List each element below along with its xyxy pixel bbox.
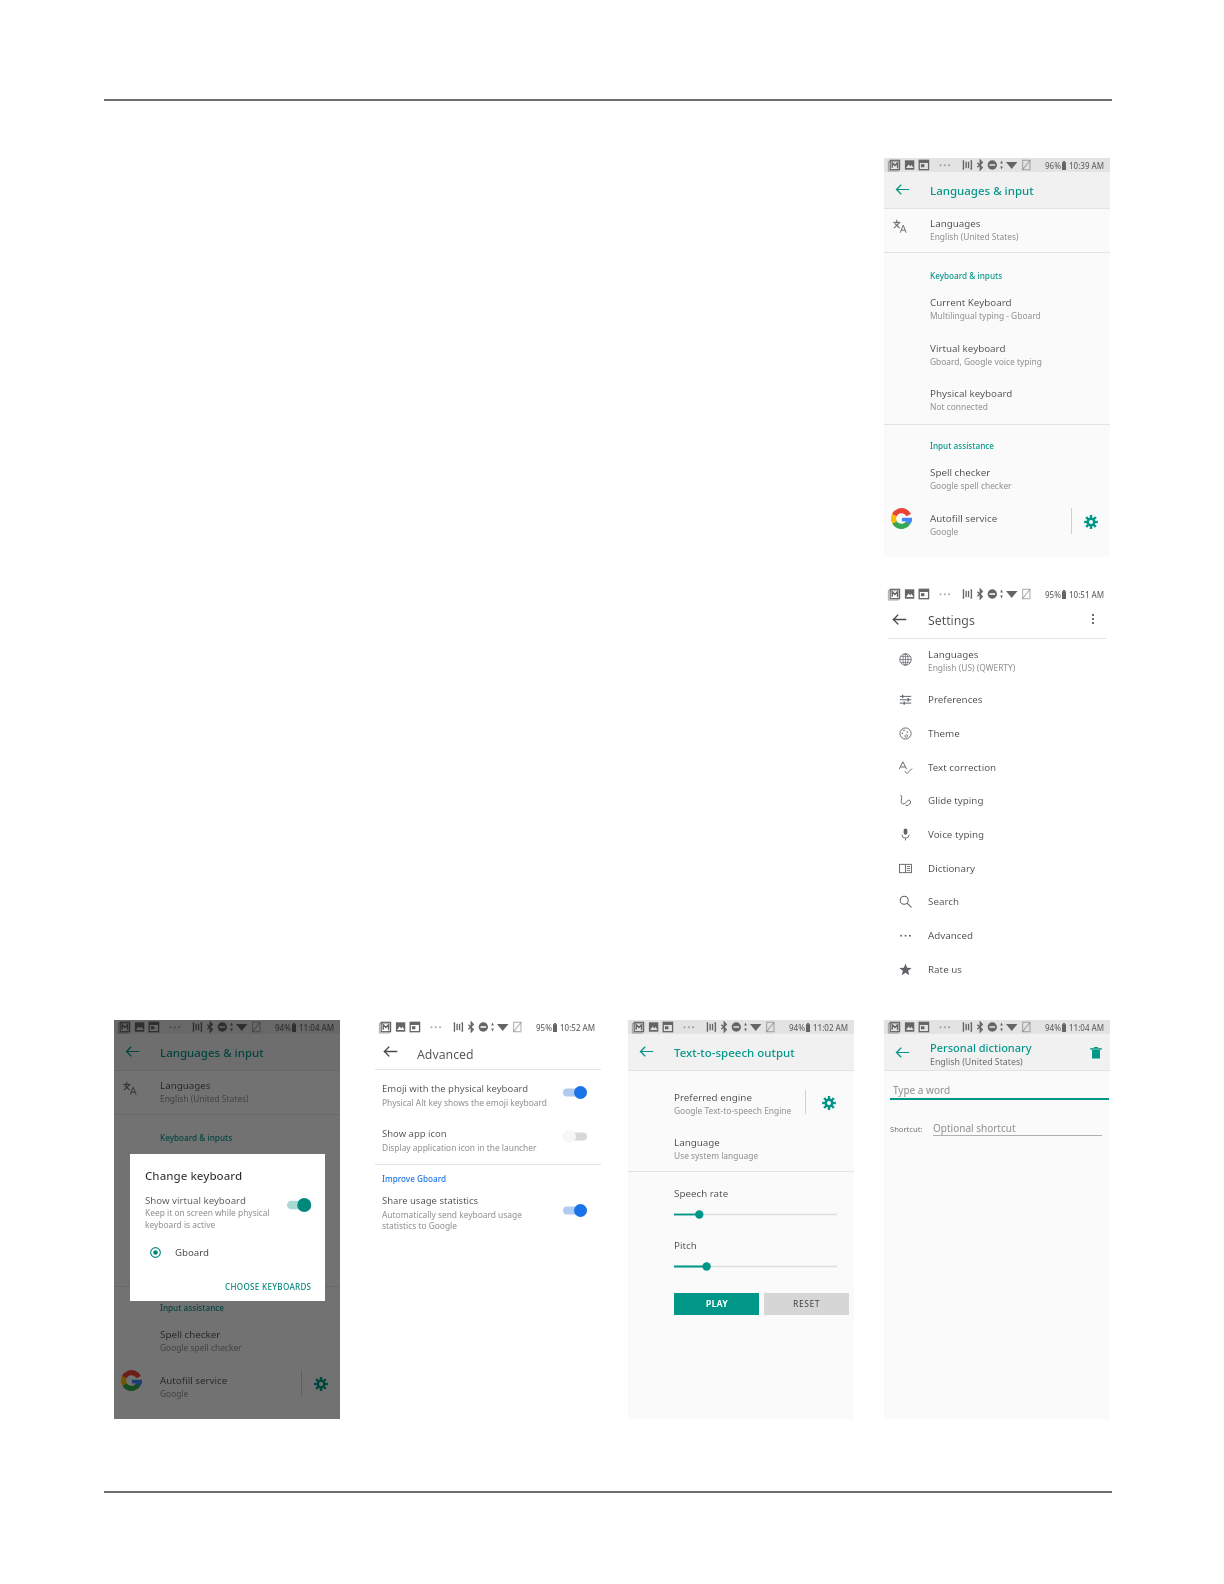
button[interactable]: Delete <box>1085 1042 1106 1063</box>
button[interactable] <box>884 459 1110 501</box>
staticText: Physical keyboard <box>930 387 1013 400</box>
button[interactable]: RESET <box>764 1293 849 1315</box>
staticText: Text-to-speech output <box>674 1045 795 1061</box>
button[interactable]: Back <box>122 1041 143 1062</box>
button[interactable] <box>628 1084 854 1126</box>
button[interactable] <box>884 380 1110 424</box>
staticText: Settings <box>928 612 975 629</box>
button[interactable]: Back <box>892 179 913 200</box>
staticText: English (United States) <box>930 1056 1023 1068</box>
button[interactable]: Dictionary <box>884 852 1110 886</box>
button[interactable] <box>884 208 1110 252</box>
staticText: Autofill service <box>930 512 998 525</box>
staticText: Autofill service <box>160 1374 228 1387</box>
staticText: Change keyboard <box>145 1168 243 1184</box>
button[interactable] <box>114 1197 340 1241</box>
staticText: Use system language <box>674 1150 759 1161</box>
button[interactable] <box>375 1076 601 1120</box>
button[interactable] <box>884 504 1110 546</box>
staticText: Theme <box>928 727 960 740</box>
button[interactable]: Theme <box>884 717 1110 751</box>
staticText: Google <box>930 526 959 537</box>
staticText: Rate us <box>928 963 962 976</box>
button[interactable]: Advanced <box>884 919 1110 953</box>
staticText: Display application icon in the launcher <box>382 1142 537 1153</box>
staticText: Google spell checker <box>160 1342 242 1353</box>
staticText: Languages & input <box>930 183 1034 199</box>
button[interactable]: Show virtual keyboard toggle <box>287 1198 311 1212</box>
staticText: Google Text-to-speech Engine <box>674 1105 792 1116</box>
button[interactable]: Rate us <box>884 953 1110 987</box>
button[interactable]: Text correction <box>884 751 1110 785</box>
staticText: RESET <box>793 1298 821 1310</box>
staticText: Gboard, Google voice typing <box>930 356 1042 367</box>
button[interactable]: Gboard <box>150 1246 210 1259</box>
staticText: Dictionary <box>928 862 975 875</box>
staticText: Physical Alt key shows the emoji keyboar… <box>382 1097 547 1108</box>
button[interactable]: Setting on <box>563 1086 587 1099</box>
button[interactable] <box>114 1151 340 1195</box>
staticText: 10:52 AM <box>560 1022 596 1033</box>
staticText: Gboard, Google voice typing <box>160 1218 272 1229</box>
staticText: PLAY <box>706 1298 728 1310</box>
staticText: Preferences <box>928 693 983 706</box>
button[interactable] <box>375 1189 601 1237</box>
button[interactable]: Back <box>892 1042 913 1063</box>
staticText: Spell checker <box>930 466 991 479</box>
button[interactable]: CHOOSE KEYBOARDS <box>222 1278 315 1295</box>
button[interactable] <box>114 1070 340 1114</box>
staticText: Speech rate <box>674 1187 729 1200</box>
button[interactable]: Setting on <box>563 1204 587 1217</box>
staticText: Keyboard & inputs <box>930 270 1003 281</box>
button[interactable]: Settings <box>308 1371 334 1397</box>
staticText: 11:04 AM <box>299 1022 335 1033</box>
button[interactable] <box>884 289 1110 333</box>
button[interactable]: Preferences <box>884 683 1110 717</box>
staticText: Glide typing <box>928 794 984 807</box>
staticText: 10:51 AM <box>1069 589 1105 600</box>
staticText: Language <box>674 1136 720 1149</box>
button[interactable]: Search <box>884 885 1110 919</box>
staticText: CHOOSE KEYBOARDS <box>225 1281 312 1292</box>
staticText: Spell checker <box>160 1328 221 1341</box>
staticText: Not connected <box>930 401 988 412</box>
staticText: 96% <box>1045 160 1061 171</box>
staticText: English (United States) <box>930 231 1019 242</box>
button[interactable]: Back <box>889 609 910 630</box>
staticText: 94% <box>275 1022 291 1033</box>
staticText: Google <box>160 1388 189 1399</box>
button[interactable]: Glide typing <box>884 784 1110 818</box>
staticText: 94% <box>789 1022 805 1033</box>
button[interactable] <box>114 1242 340 1286</box>
staticText: Input assistance <box>160 1302 225 1313</box>
staticText: Multilingual typing - Gboard <box>160 1172 271 1183</box>
staticText: Advanced <box>928 929 974 942</box>
staticText: Keyboard & inputs <box>160 1132 233 1143</box>
staticText: Virtual keyboard <box>930 342 1006 355</box>
button[interactable]: Settings <box>1078 509 1104 535</box>
button[interactable]: PLAY <box>674 1293 759 1315</box>
button[interactable]: Back <box>636 1041 657 1062</box>
button[interactable] <box>375 1121 601 1165</box>
button[interactable]: Languages <box>884 643 1110 677</box>
staticText: Languages <box>930 217 981 230</box>
button[interactable] <box>628 1130 854 1172</box>
button[interactable]: Setting off <box>563 1130 587 1143</box>
button[interactable]: More options <box>1083 609 1103 629</box>
button[interactable] <box>884 335 1110 379</box>
staticText: Virtual keyboard <box>160 1204 236 1217</box>
staticText: Show virtual keyboard <box>145 1194 246 1207</box>
staticText: 95% <box>536 1022 552 1033</box>
button[interactable]: Settings <box>816 1090 842 1116</box>
button[interactable] <box>114 1321 340 1363</box>
staticText: Show app icon <box>382 1127 447 1140</box>
button[interactable]: Back <box>380 1041 401 1062</box>
button[interactable] <box>114 1366 340 1408</box>
staticText: Input assistance <box>930 440 995 451</box>
staticText: Voice typing <box>928 828 985 841</box>
staticText: Personal dictionary <box>930 1040 1032 1055</box>
button[interactable]: Voice typing <box>884 818 1110 852</box>
staticText: 94% <box>1045 1022 1061 1033</box>
